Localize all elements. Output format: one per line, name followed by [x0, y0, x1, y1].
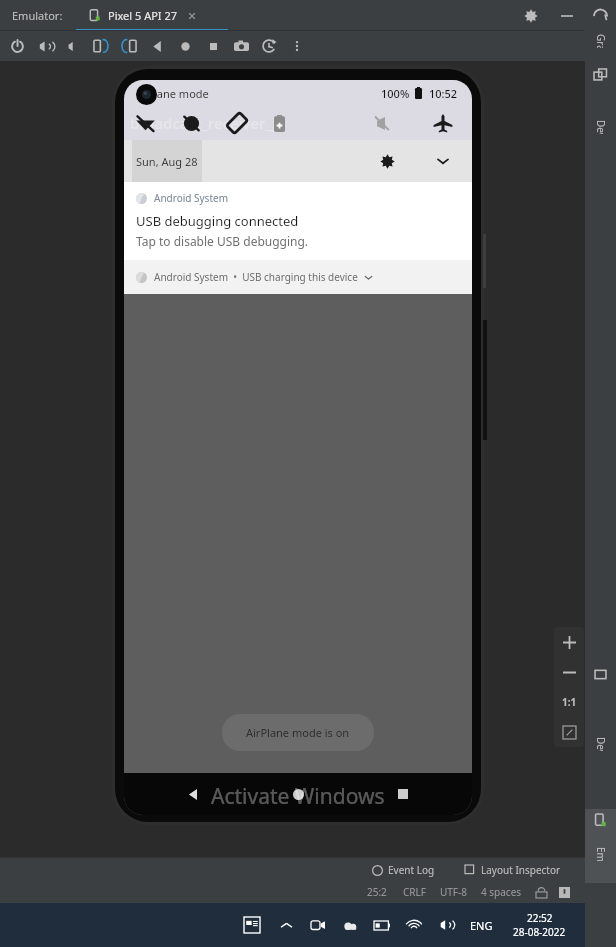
staticText: broadcast_receiver_jt [130, 113, 282, 133]
button[interactable]: Pixel 5 API 27 [83, 0, 204, 31]
button[interactable]: Zoom out [554, 657, 584, 687]
button[interactable]: Battery saver [266, 110, 292, 136]
button[interactable]: Settings [374, 148, 400, 174]
button[interactable]: Expand [430, 148, 456, 174]
staticText: Android System [154, 191, 229, 205]
button[interactable]: OneDrive [338, 913, 362, 937]
staticText: 22:52 [527, 911, 553, 925]
staticText: 100% [381, 86, 410, 101]
button[interactable]: Zoom in [554, 627, 584, 657]
button[interactable]: Volume down [59, 32, 87, 60]
staticText: Tap to disable USB debugging. [136, 233, 309, 249]
staticText: 4 spaces [481, 885, 522, 899]
button[interactable]: Home [171, 32, 199, 60]
button[interactable]: Fit to screen [554, 717, 584, 747]
button[interactable]: Event Log [367, 863, 440, 877]
button[interactable]: Muted [370, 110, 396, 136]
button[interactable]: Notifications [580, 909, 612, 941]
button[interactable]: Show hidden icons [274, 913, 298, 937]
button[interactable]: Volume [434, 913, 458, 937]
staticText: 10:52 [429, 86, 458, 101]
button[interactable]: Airplane mode on [430, 110, 456, 136]
button[interactable]: Android System • USB charging this devic… [124, 260, 472, 294]
button[interactable]: Wi-Fi off [132, 110, 158, 136]
staticText: AirPlane mode is on [246, 725, 350, 740]
button[interactable]: Home [285, 781, 311, 807]
button[interactable]: Sun, Aug 28 [132, 140, 202, 182]
staticText: Layout Inspector [481, 863, 561, 877]
button[interactable]: News and interests [238, 911, 266, 939]
button[interactable]: Power [3, 32, 31, 60]
button[interactable]: Camera [306, 913, 330, 937]
staticText: Event Log [388, 863, 435, 877]
staticText: UTF-8 [440, 885, 467, 899]
button[interactable]: Actual size [554, 687, 584, 717]
button[interactable]: History [255, 32, 283, 60]
button[interactable]: 22:52 [509, 911, 570, 939]
staticText: Android System • USB charging this devic… [154, 270, 358, 284]
staticText: 28-08-2022 [513, 925, 566, 939]
button[interactable]: Overview [199, 32, 227, 60]
staticText: Activate Windows [211, 782, 385, 811]
button[interactable]: Minimize [554, 3, 580, 29]
button[interactable]: Rotate left [87, 32, 115, 60]
button[interactable]: Battery [370, 913, 394, 937]
staticText: Emulator: [12, 8, 63, 23]
button[interactable]: ENG [466, 918, 497, 933]
button[interactable]: Emulator [585, 809, 616, 883]
staticText: Pixel 5 API 27 [108, 8, 178, 23]
button[interactable]: Device File Explorer [585, 663, 616, 809]
staticText: Device File Explorer [594, 737, 608, 751]
button[interactable]: Gradle [585, 2, 616, 64]
button[interactable]: Layout Inspector [460, 863, 566, 877]
staticText: Emulator [594, 847, 608, 861]
staticText: ENG [470, 918, 493, 933]
staticText: CRLF [403, 885, 426, 899]
button[interactable]: Network [402, 913, 426, 937]
staticText: USB debugging connected [136, 212, 299, 230]
button[interactable]: Overview [390, 781, 416, 807]
staticText: Sun, Aug 28 [136, 154, 198, 169]
button[interactable]: Close tab [186, 10, 198, 22]
button[interactable]: Settings [518, 3, 544, 29]
button[interactable]: Volume up [31, 32, 59, 60]
staticText: lane mode [154, 86, 209, 101]
staticText: 1:1 [562, 695, 577, 709]
button[interactable]: Device Manager [585, 64, 616, 174]
staticText: Device Manager [594, 120, 608, 134]
button[interactable]: Back [180, 781, 206, 807]
staticText: 25:2 [367, 885, 387, 899]
button[interactable]: Mobile data off [178, 110, 204, 136]
button[interactable]: Rotate right [115, 32, 143, 60]
staticText: Gradle [594, 34, 608, 48]
button[interactable]: Screenshot [227, 32, 255, 60]
button[interactable]: Auto-rotate [224, 110, 250, 136]
button[interactable]: Android System [124, 182, 472, 260]
button[interactable]: More [283, 32, 311, 60]
button[interactable]: Back [143, 32, 171, 60]
